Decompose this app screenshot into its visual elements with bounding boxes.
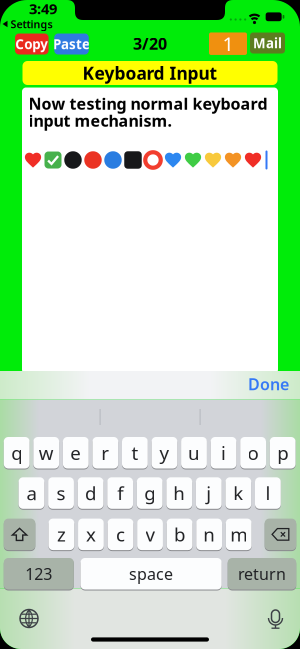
staticText: v <box>146 522 155 547</box>
button[interactable]: Mail <box>250 32 285 53</box>
button[interactable]: g <box>137 477 163 509</box>
button[interactable]: n <box>196 519 222 550</box>
staticText: Done <box>248 373 289 395</box>
button[interactable]: 123 <box>4 558 74 589</box>
staticText: l <box>265 481 270 505</box>
button[interactable]: space <box>80 558 222 589</box>
button[interactable]: e <box>63 437 89 468</box>
staticText: q <box>11 440 22 465</box>
button[interactable]: j <box>196 477 222 509</box>
staticText: n <box>203 522 215 547</box>
button[interactable]: Shift <box>4 519 35 550</box>
button[interactable]: Delete <box>265 519 296 550</box>
staticText: m <box>230 522 247 547</box>
staticText: u <box>188 440 200 465</box>
staticText: o <box>248 440 259 465</box>
button[interactable]: Paste <box>54 33 89 54</box>
staticText: Paste <box>53 35 90 53</box>
button[interactable]: r <box>92 437 118 468</box>
button[interactable]: Dictation <box>266 610 284 629</box>
button[interactable]: a <box>19 477 44 509</box>
staticText: 123 <box>25 563 52 584</box>
staticText: j <box>206 481 211 505</box>
staticText: y <box>159 440 169 465</box>
button[interactable]: y <box>152 437 177 468</box>
button[interactable]: t <box>122 437 148 468</box>
button[interactable]: m <box>226 519 252 550</box>
button[interactable]: q <box>4 437 30 468</box>
button[interactable]: w <box>33 437 59 468</box>
button[interactable]: h <box>166 477 192 509</box>
staticText: input mechanism. <box>28 110 171 131</box>
button[interactable]: u <box>181 437 207 468</box>
staticText: w <box>39 440 54 465</box>
staticText: z <box>57 522 66 547</box>
button[interactable]: b <box>167 519 192 550</box>
button[interactable]: Next keyboard <box>20 609 38 627</box>
staticText: Keyboard Input <box>82 61 217 84</box>
button[interactable]: i <box>211 437 236 468</box>
staticText: Settings <box>10 17 52 31</box>
button[interactable]: p <box>270 437 296 468</box>
button[interactable]: v <box>137 519 163 550</box>
button[interactable]: z <box>48 519 74 550</box>
button[interactable]: d <box>78 477 103 509</box>
staticText: 3:49 <box>29 0 57 18</box>
button[interactable]: o <box>240 437 266 468</box>
staticText: f <box>117 481 123 505</box>
button[interactable]: return <box>228 558 296 589</box>
staticText: e <box>70 440 81 465</box>
button[interactable]: s <box>48 477 74 509</box>
button[interactable]: Done <box>248 373 289 395</box>
staticText: g <box>144 481 155 505</box>
staticText: p <box>277 440 288 465</box>
staticText: a <box>26 481 36 505</box>
staticText: x <box>86 522 96 547</box>
staticText: i <box>221 440 226 465</box>
staticText: d <box>85 481 96 505</box>
staticText: s <box>57 481 66 505</box>
button[interactable]: Copy <box>15 33 49 54</box>
button[interactable]: Back to Settings <box>2 17 52 31</box>
staticText: 3/20 <box>133 33 167 54</box>
staticText: Mail <box>253 34 282 52</box>
staticText: Copy <box>15 35 48 53</box>
staticText: r <box>101 440 109 465</box>
staticText: return <box>238 563 286 584</box>
button[interactable]: l <box>255 477 281 509</box>
staticText: t <box>131 440 138 465</box>
staticText: k <box>233 481 243 505</box>
button[interactable]: k <box>225 477 251 509</box>
staticText: 1 <box>222 30 233 57</box>
staticText: space <box>129 563 173 584</box>
button[interactable]: f <box>107 477 133 509</box>
staticText: Now testing normal keyboard <box>28 93 267 114</box>
staticText: c <box>116 522 125 547</box>
staticText: b <box>174 522 185 547</box>
button[interactable]: c <box>108 519 133 550</box>
staticText: h <box>173 481 185 505</box>
button[interactable]: x <box>78 519 104 550</box>
